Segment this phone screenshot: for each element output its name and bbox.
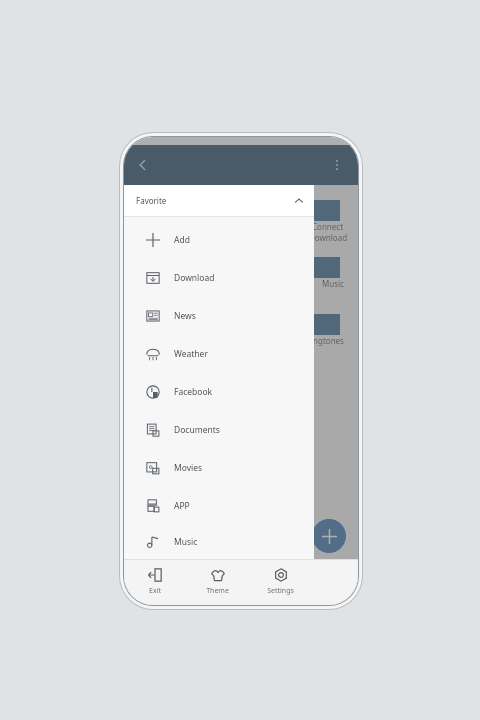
staticText: Music: [174, 536, 198, 548]
button[interactable]: Theme: [186, 559, 249, 605]
button[interactable]: Movies: [124, 449, 314, 487]
button[interactable]: Facebook: [124, 373, 314, 411]
staticText: Movies: [174, 462, 203, 474]
button[interactable]: Music: [124, 525, 314, 559]
staticText: Exit: [149, 586, 161, 596]
button[interactable]: Weather: [124, 335, 314, 373]
staticText: Documents: [174, 424, 220, 436]
button[interactable]: News: [124, 297, 314, 335]
button[interactable]: Add: [312, 519, 346, 553]
staticText: APP: [174, 500, 190, 512]
staticText: Ringtones: [306, 335, 344, 346]
button[interactable]: Settings: [249, 559, 312, 605]
staticText: Connect: [312, 221, 344, 232]
button[interactable]: Documents: [124, 411, 314, 449]
staticText: Download: [309, 232, 348, 243]
staticText: Favorite: [136, 195, 167, 206]
button[interactable]: Download: [124, 259, 314, 297]
staticText: Theme: [206, 586, 229, 596]
button[interactable]: [270, 248, 340, 278]
button[interactable]: Favorite: [124, 185, 314, 216]
button[interactable]: [270, 191, 340, 221]
button[interactable]: [270, 305, 340, 335]
staticText: Facebook: [174, 386, 213, 398]
button[interactable]: Exit: [124, 559, 186, 605]
button[interactable]: APP: [124, 487, 314, 525]
button[interactable]: Back: [130, 152, 156, 178]
staticText: Weather: [174, 348, 208, 360]
staticText: Settings: [267, 586, 294, 596]
staticText: Music: [322, 278, 344, 289]
button[interactable]: More options: [324, 152, 350, 178]
staticText: Add: [174, 234, 190, 246]
button[interactable]: Add: [124, 221, 314, 259]
staticText: News: [174, 310, 196, 322]
staticText: Download: [174, 272, 215, 284]
